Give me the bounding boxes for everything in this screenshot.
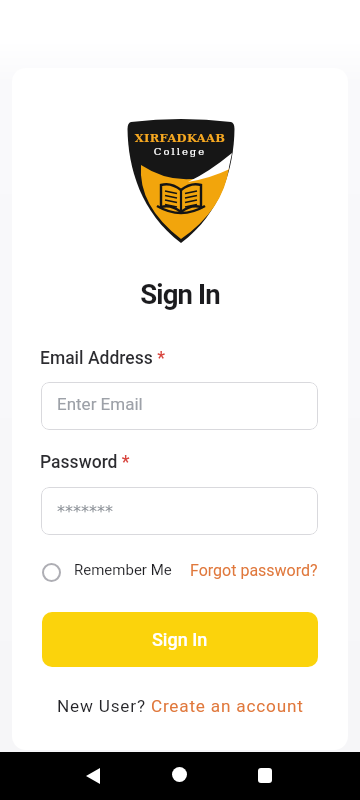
button[interactable]: Forgot password?: [190, 561, 318, 580]
staticText: *******: [57, 502, 113, 521]
button[interactable]: New User? Create an account: [0, 694, 360, 718]
staticText: Email Address *: [40, 348, 165, 369]
staticText: XIRFADKAAB: [0, 131, 360, 145]
button[interactable]: Sign In: [42, 612, 318, 667]
button[interactable]: Remember Me: [42, 562, 172, 582]
staticText: Enter Email: [57, 394, 143, 414]
staticText: Remember Me: [74, 561, 172, 579]
staticText: Password *: [40, 452, 130, 473]
staticText: College: [0, 146, 360, 158]
staticText: Sign In: [152, 629, 208, 650]
button[interactable]: [84, 766, 102, 786]
button[interactable]: [172, 767, 187, 782]
button[interactable]: *******: [41, 487, 318, 535]
staticText: Sign In: [0, 278, 360, 310]
button[interactable]: [258, 768, 272, 783]
button[interactable]: Enter Email: [41, 382, 318, 430]
staticText: New User? Create an account: [57, 696, 304, 716]
